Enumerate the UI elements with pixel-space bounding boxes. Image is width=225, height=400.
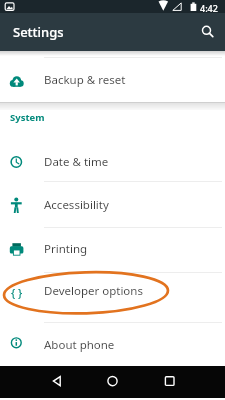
button[interactable] xyxy=(154,366,184,398)
staticText: System xyxy=(10,111,45,124)
staticText: Date & time xyxy=(44,154,109,170)
staticText: 4:42 xyxy=(200,2,218,14)
staticText: } xyxy=(18,285,23,300)
button[interactable] xyxy=(195,17,225,47)
staticText: Accessibility xyxy=(44,197,109,213)
button[interactable]: Accessibility xyxy=(0,183,225,227)
button[interactable]: Date & time xyxy=(0,140,225,184)
button[interactable] xyxy=(42,366,72,398)
staticText: About phone xyxy=(44,337,115,353)
staticText: Backup & reset xyxy=(44,72,126,88)
button[interactable] xyxy=(97,366,127,398)
staticText: { xyxy=(11,285,16,300)
button[interactable]: Backup & reset xyxy=(0,58,225,102)
button[interactable]: About phone xyxy=(0,322,225,367)
button[interactable]: Printing xyxy=(0,227,225,271)
staticText: Settings xyxy=(13,23,64,41)
staticText: Printing xyxy=(44,241,88,257)
staticText: Developer options xyxy=(44,283,143,299)
button[interactable]: Developer options xyxy=(0,269,225,313)
